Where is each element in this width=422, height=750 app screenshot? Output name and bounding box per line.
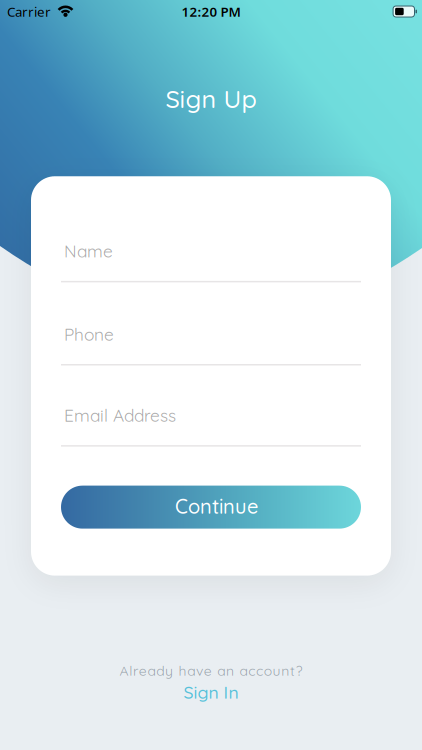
staticText: Email Address [64,404,176,426]
staticText: Continue [175,494,258,519]
button[interactable]: Email Address [61,404,361,447]
button[interactable]: Phone [61,323,361,365]
staticText: 12:20 PM [181,3,240,20]
button[interactable]: Name [61,240,361,282]
staticText: Sign In [183,681,238,703]
staticText: Name [64,240,113,262]
staticText: Sign Up [165,83,256,114]
button[interactable]: Continue [61,486,361,529]
button[interactable]: Sign In [183,681,238,703]
staticText: Phone [64,323,114,345]
staticText: Already have an account? [119,662,303,679]
staticText: Carrier [7,3,51,20]
